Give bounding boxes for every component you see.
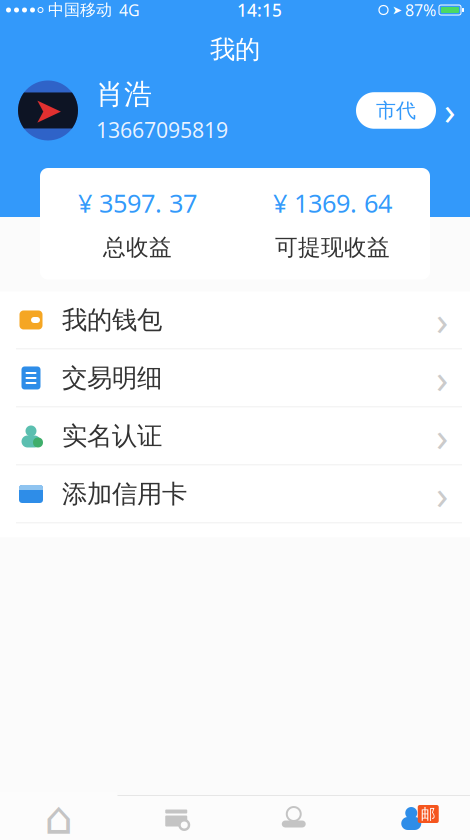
- staticText: 实名认证: [62, 420, 162, 451]
- staticText: ➤: [392, 3, 402, 17]
- staticText: 市代: [376, 98, 416, 123]
- staticText: 13667095819: [96, 115, 228, 144]
- staticText: 我的: [210, 34, 260, 65]
- staticText: 总收益: [103, 234, 172, 261]
- staticText: 87%: [405, 0, 436, 21]
- button[interactable]: Earnings: [235, 796, 352, 840]
- staticText: 交易明细: [62, 362, 162, 393]
- staticText: ¥ 3597. 37: [78, 186, 197, 220]
- staticText: 我的钱包: [62, 304, 162, 335]
- staticText: ¥ 1369. 64: [273, 186, 392, 220]
- button[interactable]: 交易明细: [0, 349, 470, 407]
- button[interactable]: Records: [117, 796, 235, 840]
- button[interactable]: 联系客服: [0, 755, 470, 813]
- button[interactable]: 我的钱包: [0, 291, 470, 349]
- button[interactable]: Home: [0, 796, 117, 840]
- staticText: ›: [436, 409, 448, 462]
- button[interactable]: Profile: [352, 796, 470, 840]
- staticText: ›: [444, 86, 456, 135]
- staticText: 中国移动: [48, 0, 112, 20]
- staticText: 可提现收益: [275, 234, 390, 261]
- staticText: ➤: [33, 91, 62, 130]
- staticText: ›: [436, 467, 448, 520]
- staticText: 4G: [119, 0, 140, 21]
- button[interactable]: 添加信用卡: [0, 465, 470, 523]
- button[interactable]: 市代: [356, 86, 456, 135]
- staticText: ›: [436, 351, 448, 404]
- staticText: 添加信用卡: [62, 478, 187, 509]
- staticText: ›: [436, 757, 448, 810]
- button[interactable]: 实名认证: [0, 407, 470, 465]
- staticText: 邮: [421, 805, 436, 823]
- staticText: ›: [436, 293, 448, 346]
- staticText: 肖浩: [96, 77, 152, 111]
- staticText: ⌂: [44, 792, 73, 840]
- staticText: 14:15: [237, 0, 282, 21]
